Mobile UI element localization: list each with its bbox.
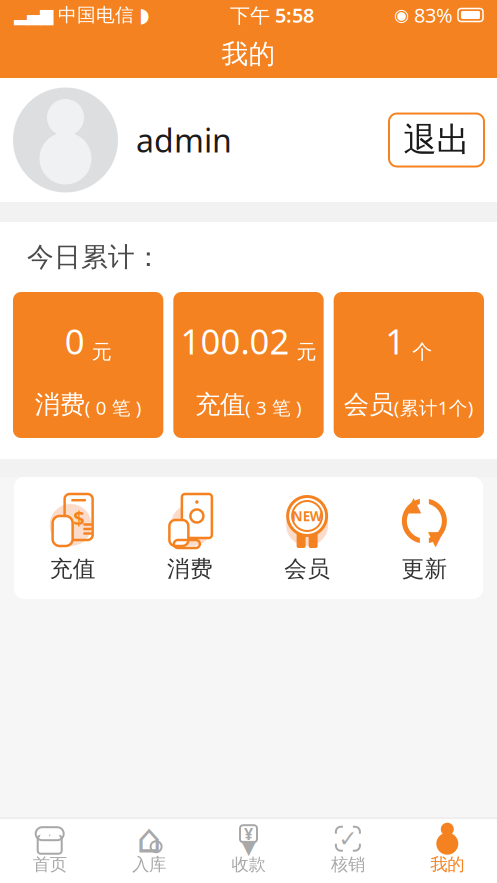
staticText: 充值 xyxy=(50,555,96,583)
button[interactable]: ¥ xyxy=(199,825,298,875)
staticText: NEW xyxy=(292,507,323,525)
button[interactable]: 100.02 xyxy=(173,292,324,438)
staticText: 消费 xyxy=(167,555,213,583)
button[interactable]: 1 xyxy=(334,292,484,438)
staticText: ( 0 笔 ) xyxy=(85,395,142,420)
staticText: 核销 xyxy=(331,854,365,875)
staticText: 退出 xyxy=(403,119,469,160)
button[interactable]: ⌂ xyxy=(99,825,199,875)
staticText: ▲ xyxy=(406,493,421,515)
staticText: 更新 xyxy=(401,555,447,583)
staticText: 今日累计： xyxy=(27,241,162,273)
staticText: 会员 xyxy=(284,555,330,583)
staticText: ✓ xyxy=(338,826,357,851)
staticText: admin xyxy=(136,119,232,161)
staticText: 0 xyxy=(65,318,85,364)
staticText: ¥ xyxy=(244,823,253,844)
button[interactable]: 退出 xyxy=(389,113,484,166)
button[interactable]: ▲ xyxy=(366,493,483,583)
staticText: ( 3 笔 ) xyxy=(245,395,302,420)
staticText: $ xyxy=(73,504,84,531)
staticText: 个 xyxy=(412,339,432,364)
staticText: 充值 xyxy=(195,389,245,420)
button[interactable]: $ xyxy=(14,493,131,583)
staticText: (累计1个) xyxy=(394,395,474,420)
staticText: 下午 5:58 xyxy=(230,2,314,28)
staticText: 100.02 xyxy=(180,318,289,364)
staticText: ⌂ xyxy=(137,816,162,861)
button[interactable]: NEW xyxy=(248,493,366,583)
staticText: 1 xyxy=(385,318,405,364)
staticText: 元 xyxy=(92,339,112,364)
button[interactable]: 首页 xyxy=(0,825,99,875)
staticText: 我的 xyxy=(221,38,275,70)
staticText: 会员 xyxy=(344,389,394,420)
button[interactable]: 0 xyxy=(13,292,163,438)
staticText: ◉ xyxy=(394,5,409,25)
staticText: 83% xyxy=(414,2,453,28)
staticText: 消费 xyxy=(35,389,85,420)
staticText: ◗ xyxy=(139,4,150,26)
staticText: 入库 xyxy=(132,854,166,875)
button[interactable]: ✓ xyxy=(298,825,398,875)
button[interactable]: 消费 xyxy=(131,493,248,583)
staticText: ▂▄▆ xyxy=(14,5,53,25)
staticText: ▼ xyxy=(428,527,443,549)
staticText: 中国电信 xyxy=(58,3,134,26)
button[interactable]: 我的 xyxy=(398,825,497,875)
staticText: 收款 xyxy=(231,854,265,875)
staticText: 首页 xyxy=(33,854,67,875)
staticText: 元 xyxy=(296,339,316,364)
staticText: ▼ xyxy=(241,835,256,858)
staticText: 我的 xyxy=(430,854,464,875)
